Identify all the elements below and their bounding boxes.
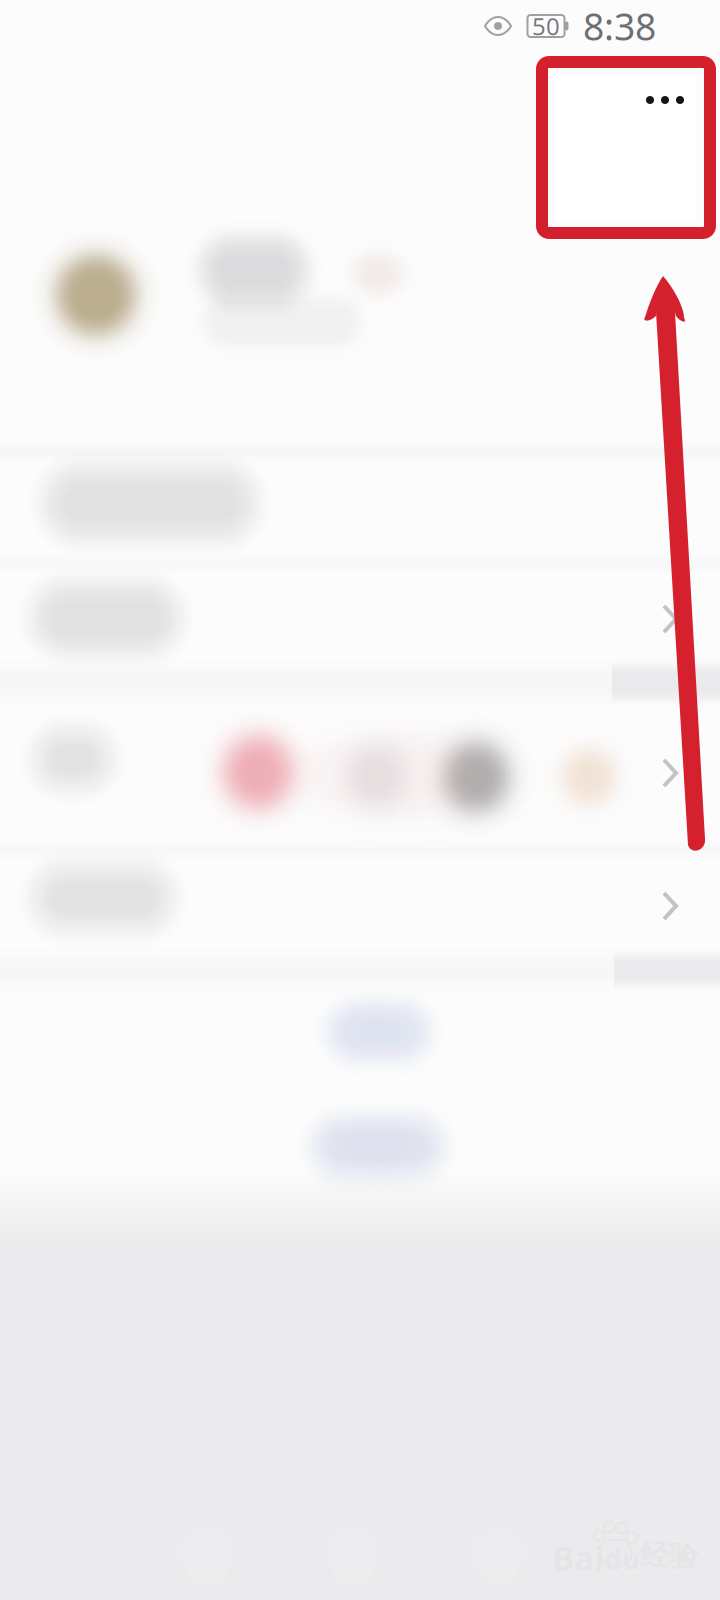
button[interactable]: More options — [542, 62, 710, 233]
staticText: 8:38 — [583, 1, 656, 51]
staticText: 50 — [532, 10, 560, 42]
